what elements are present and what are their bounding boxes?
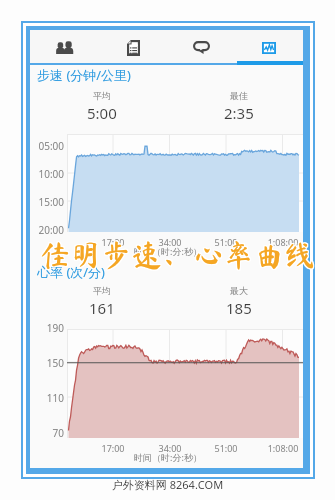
staticText: 5:00 [87, 103, 117, 123]
staticText: 190 [30, 321, 64, 335]
staticText: 佳明步速、心率曲线 [39, 241, 315, 271]
staticText: 185 [226, 298, 252, 318]
button[interactable]: People [30, 30, 99, 65]
staticText: 161 [89, 298, 115, 318]
staticText: 150 [30, 356, 64, 370]
staticText: 34:00 [140, 442, 200, 454]
staticText: 17:00 [83, 442, 143, 454]
staticText: 最大 [230, 285, 248, 296]
staticText: 步速 (分钟/公里) [37, 66, 132, 84]
staticText: 时间（时:分:秒） [68, 451, 268, 463]
staticText: 佳明步速、心率曲线 [39, 240, 315, 270]
staticText: 时间（时:分:秒） [68, 245, 268, 257]
staticText: 佳明步速、心率曲线 [39, 239, 315, 269]
staticText: 佳明步速、心率曲线 [40, 240, 316, 270]
staticText: 17:00 [83, 236, 143, 248]
staticText: 51:00 [196, 236, 256, 248]
staticText: 1:08:00 [253, 442, 313, 454]
staticText: 平均 [93, 285, 111, 296]
button[interactable]: Charts [235, 30, 303, 65]
staticText: 110 [30, 391, 64, 405]
button[interactable]: Repeat [167, 30, 235, 65]
staticText: 34:00 [140, 236, 200, 248]
staticText: 20:00 [30, 223, 64, 237]
staticText: 佳明步速、心率曲线 [41, 239, 317, 269]
staticText: 51:00 [196, 442, 256, 454]
staticText: 10:00 [30, 167, 64, 181]
staticText: 2:35 [224, 103, 254, 123]
staticText: 心率 (次/分) [37, 263, 106, 281]
button[interactable]: Log [99, 30, 167, 65]
staticText: 佳明步速、心率曲线 [41, 240, 317, 270]
staticText: 1:08:00 [253, 236, 313, 248]
staticText: 户外资料网 8264.COM [0, 477, 335, 492]
staticText: 70 [30, 426, 64, 440]
staticText: 15:00 [30, 195, 64, 209]
staticText: 05:00 [30, 139, 64, 153]
staticText: 佳明步速、心率曲线 [40, 241, 316, 271]
staticText: 佳明步速、心率曲线 [41, 241, 317, 271]
staticText: 最佳 [230, 90, 248, 101]
staticText: 佳明步速、心率曲线 [40, 239, 316, 269]
staticText: 平均 [93, 90, 111, 101]
